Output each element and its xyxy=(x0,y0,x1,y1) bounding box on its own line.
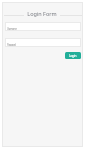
staticText: Login Form xyxy=(27,10,57,17)
staticText: Username xyxy=(7,27,17,31)
staticText: Password xyxy=(7,43,16,47)
staticText: Login xyxy=(69,54,77,58)
button[interactable]: Login xyxy=(65,52,81,59)
button[interactable]: Password xyxy=(5,38,81,47)
button[interactable]: Username xyxy=(5,22,81,31)
